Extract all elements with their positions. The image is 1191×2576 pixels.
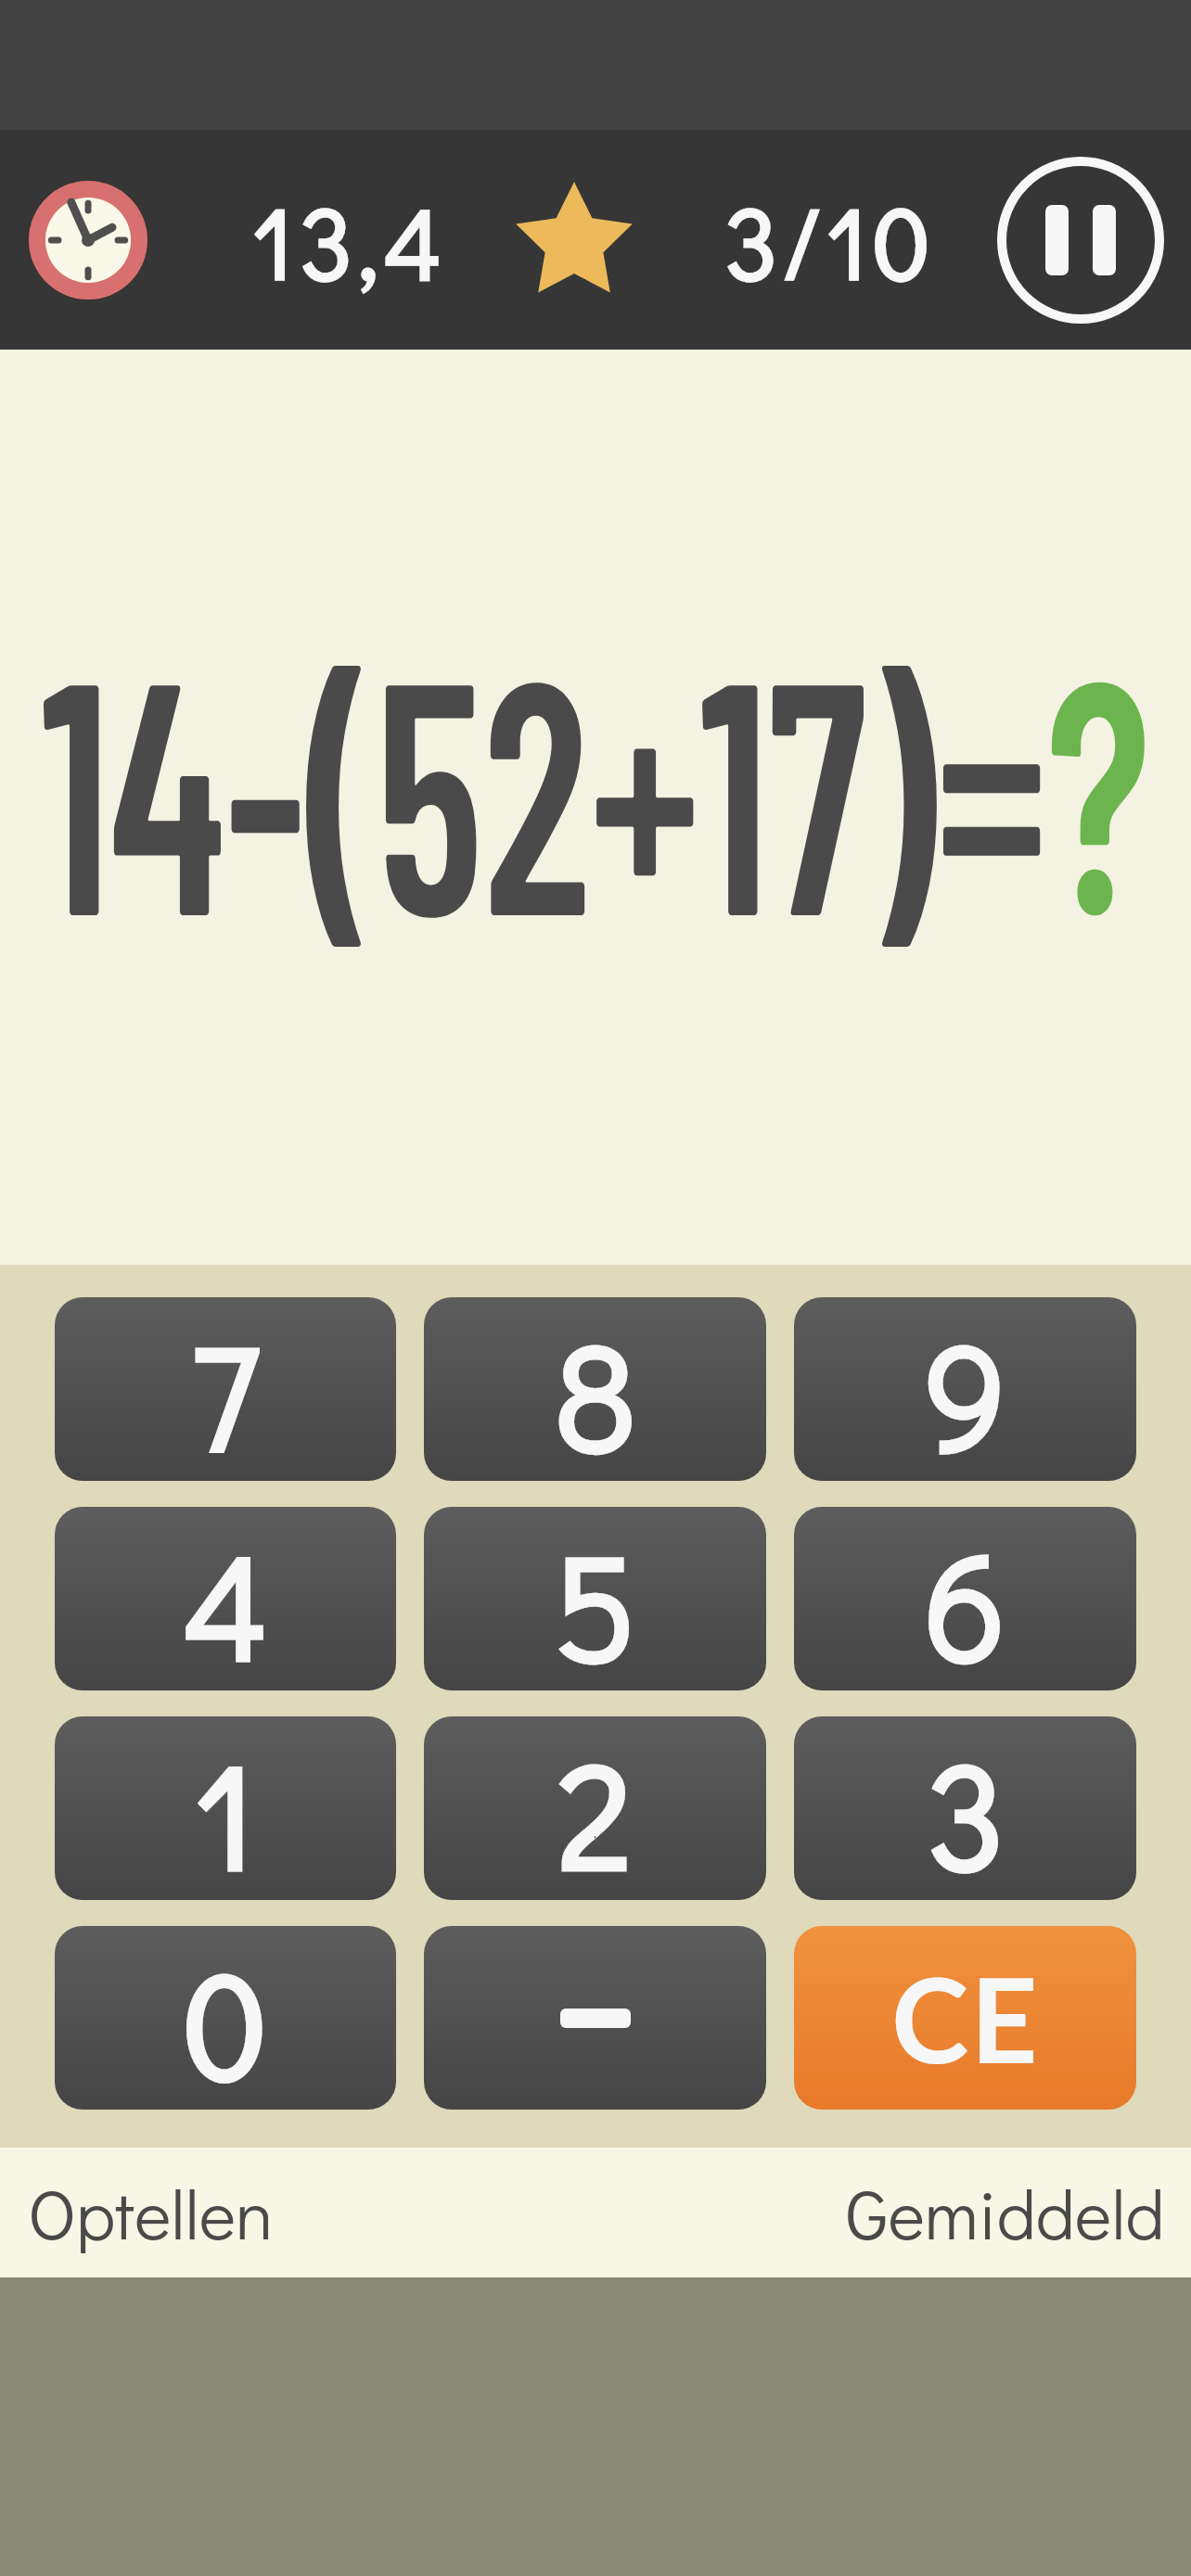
staticText: Gemiddeld bbox=[846, 2167, 1165, 2258]
staticText: 5 bbox=[554, 1507, 636, 1690]
staticText: 7 bbox=[191, 1297, 260, 1481]
button[interactable] bbox=[992, 152, 1169, 328]
staticText: 4 bbox=[184, 1507, 268, 1690]
staticText: CE bbox=[891, 1948, 1040, 2088]
staticText: 8 bbox=[555, 1297, 636, 1481]
staticText: 6 bbox=[925, 1507, 1006, 1690]
button[interactable]: 8 bbox=[424, 1297, 766, 1481]
staticText: 0 bbox=[185, 1926, 267, 2110]
staticText: 3/10 bbox=[724, 174, 936, 306]
staticText: 14-(52+17)=? bbox=[29, 587, 1162, 981]
button[interactable]: 3 bbox=[794, 1716, 1136, 1900]
button[interactable]: 4 bbox=[55, 1507, 396, 1690]
button[interactable]: 6 bbox=[794, 1507, 1136, 1690]
staticText: 1 bbox=[195, 1716, 256, 1900]
button[interactable]: 1 bbox=[55, 1716, 396, 1900]
button[interactable]: CE bbox=[794, 1926, 1136, 2110]
button[interactable]: 9 bbox=[794, 1297, 1136, 1481]
staticText: Optellen bbox=[28, 2167, 274, 2258]
button[interactable]: 5 bbox=[424, 1507, 766, 1690]
staticText: 3 bbox=[927, 1716, 1005, 1900]
button[interactable]: 7 bbox=[55, 1297, 396, 1481]
staticText: 2 bbox=[558, 1716, 632, 1900]
button[interactable]: 2 bbox=[424, 1716, 766, 1900]
staticText: 9 bbox=[924, 1297, 1006, 1481]
button[interactable] bbox=[424, 1926, 766, 2110]
button[interactable]: 0 bbox=[55, 1926, 396, 2110]
staticText: 13,4 bbox=[252, 174, 448, 306]
